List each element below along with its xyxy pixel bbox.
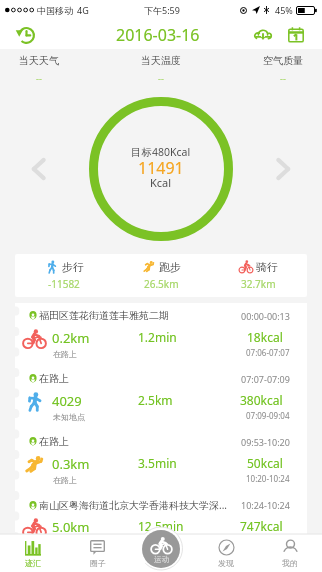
staticText: 12.5min [138, 518, 184, 534]
staticText: 在路上 [53, 475, 77, 485]
button[interactable]: 运动 [142, 530, 180, 568]
staticText: Kcal [150, 175, 172, 190]
staticText: 骑行 [256, 260, 278, 274]
staticText: 26.5km [144, 277, 179, 291]
button[interactable]: 南山区粤海街道北京大学香港科技大学深... [15, 492, 307, 534]
staticText: -11582 [48, 277, 80, 291]
staticText: -- [158, 72, 164, 84]
button[interactable]: Previous day [26, 156, 52, 182]
button[interactable]: 空气质量 [263, 49, 303, 89]
staticText: 运动 [154, 555, 169, 564]
staticText: 发现 [218, 558, 234, 568]
staticText: 00:00-00:13 [241, 310, 290, 322]
staticText: 迹汇 [25, 558, 41, 568]
button[interactable]: Download [250, 22, 275, 47]
staticText: 未知地点 [53, 412, 85, 422]
staticText: 4G [77, 4, 89, 16]
button[interactable]: 在路上 [15, 366, 307, 429]
staticText: 2016-03-16 [116, 24, 200, 46]
button[interactable]: 发现 [194, 534, 258, 572]
staticText: 0.2km [52, 329, 90, 347]
staticText: 3.5min [138, 455, 177, 471]
staticText: 在路上 [39, 435, 241, 448]
staticText: 5.0km [52, 518, 90, 536]
staticText: 07:06-07:07 [246, 347, 290, 358]
staticText: 当天天气 [19, 54, 59, 67]
staticText: 07:09-09:04 [246, 410, 290, 421]
button[interactable]: History [14, 22, 39, 47]
staticText: 步行 [62, 260, 84, 274]
button[interactable]: 当天温度 [141, 49, 181, 89]
button[interactable]: 跑步 [113, 254, 210, 297]
button[interactable]: 福田区莲花街道莲丰雅苑二期 [15, 303, 307, 366]
staticText: 我的 [282, 558, 298, 568]
staticText: 07:07-07:09 [241, 373, 290, 385]
staticText: 中国移动 [37, 5, 73, 16]
button[interactable]: 我的 [258, 534, 322, 572]
staticText: 在路上 [53, 349, 77, 359]
staticText: 11491 [138, 157, 184, 179]
staticText: 目标480Kcal [131, 145, 191, 159]
staticText: 1.2min [138, 329, 177, 345]
staticText: 09:53-10:20 [241, 436, 290, 448]
staticText: -- [36, 72, 42, 84]
button[interactable]: 圈子 [65, 534, 130, 572]
staticText: 空气质量 [263, 54, 303, 67]
button[interactable]: 骑行 [210, 254, 307, 297]
button[interactable]: Next day [270, 156, 296, 182]
staticText: 福田区莲花街道莲丰雅苑二期 [39, 309, 241, 322]
button[interactable]: 在路上 [15, 429, 307, 492]
staticText: 380kcal [240, 392, 283, 408]
staticText: 2.5km [138, 392, 173, 408]
staticText: 4029 [52, 392, 82, 410]
staticText: 圈子 [90, 558, 106, 568]
button[interactable]: Calendar [283, 22, 308, 47]
staticText: 50kcal [247, 455, 283, 471]
staticText: 在路上 [39, 372, 241, 385]
staticText: 18kcal [247, 329, 283, 345]
staticText: 跑步 [159, 260, 181, 274]
staticText: 32.7km [241, 277, 276, 291]
button[interactable]: 当天天气 [19, 49, 59, 89]
button[interactable]: 迹汇 [0, 534, 65, 572]
staticText: 南山区粤海街道北京大学香港科技大学深... [39, 498, 241, 512]
staticText: -- [280, 72, 286, 84]
staticText: 10:20-10:24 [246, 473, 290, 484]
staticText: 0.3km [52, 455, 90, 473]
staticText: 747kcal [240, 518, 283, 534]
staticText: 45% [275, 4, 293, 16]
staticText: 10:24-10:24 [241, 499, 290, 511]
button[interactable]: 步行 [15, 254, 113, 297]
staticText: 下午5:59 [144, 4, 180, 16]
staticText: 当天温度 [141, 54, 181, 67]
